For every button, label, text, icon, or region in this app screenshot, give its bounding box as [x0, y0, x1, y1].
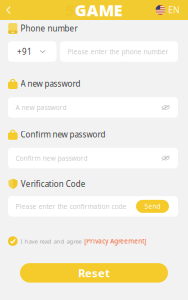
staticText: 5 — [65, 0, 74, 21]
button[interactable]: Send — [136, 200, 169, 213]
staticText: A new password — [15, 103, 66, 112]
staticText: Send — [144, 202, 160, 211]
button[interactable]: Show password — [161, 104, 170, 110]
staticText: Please enter the confirmation code — [15, 202, 126, 211]
button[interactable]: Reset — [20, 263, 168, 283]
button[interactable]: Show password — [161, 155, 170, 161]
staticText: EN — [168, 4, 180, 16]
staticText: A new password — [21, 78, 81, 89]
staticText: +91 — [17, 46, 32, 57]
staticText: Please enter the phone number — [67, 47, 168, 56]
staticText: GAME — [75, 0, 123, 21]
staticText: Verification Code — [21, 178, 86, 189]
staticText: Confirm new password — [15, 154, 87, 162]
button[interactable]: Back — [0, 0, 17, 20]
button[interactable]: Country code +91 — [8, 41, 56, 62]
staticText: Confirm new password — [21, 129, 106, 140]
button[interactable]: Language English — [156, 0, 188, 20]
staticText: Reset — [78, 265, 110, 280]
staticText: I have read and agree — [20, 237, 81, 245]
button[interactable]: I have read and agree — [8, 236, 178, 246]
staticText: [Privacy Agreement] — [84, 237, 146, 245]
staticText: Phone number — [21, 23, 78, 34]
